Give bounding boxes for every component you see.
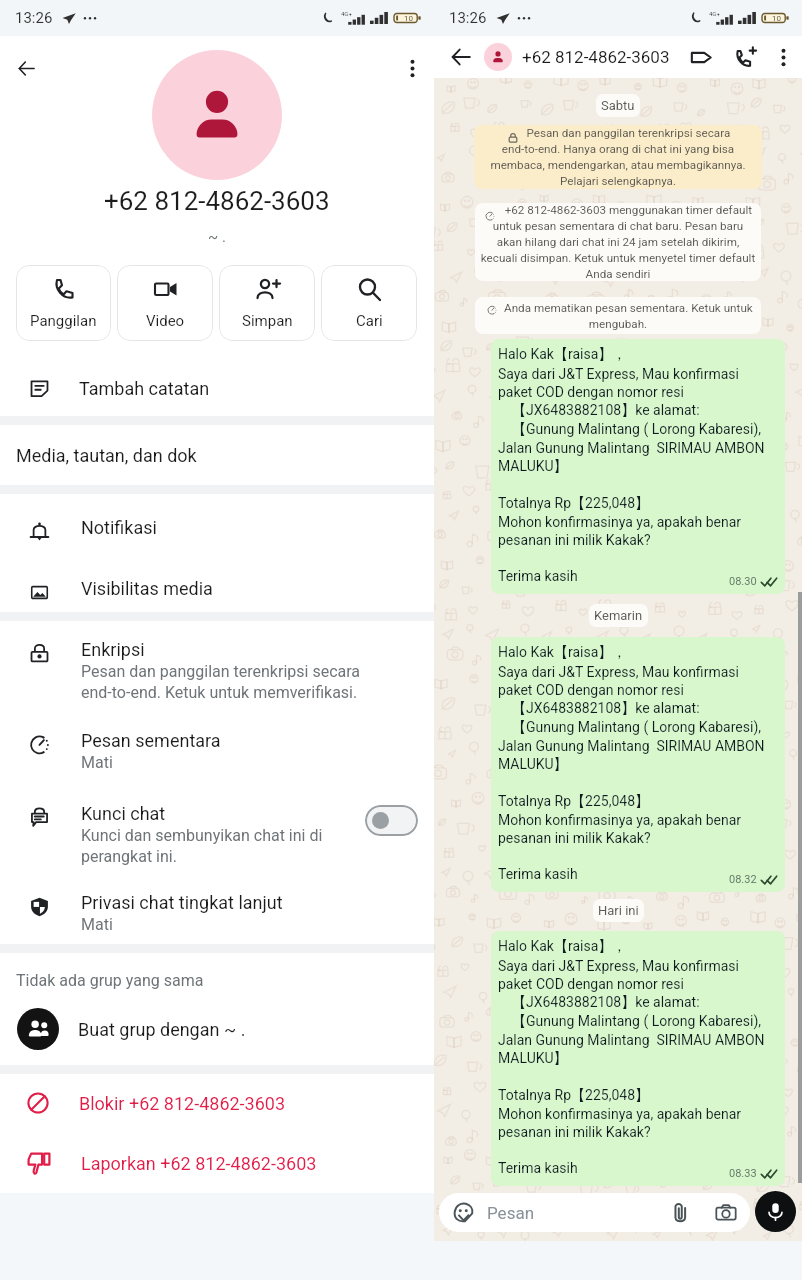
staticText: Anda mematikan pesan sementara. Ketuk un… xyxy=(475,301,761,331)
staticText: +62 812-4862-3603 xyxy=(104,186,330,216)
button[interactable]: Back xyxy=(4,46,48,90)
staticText: Blokir +62 812-4862-3603 xyxy=(79,1093,286,1114)
button[interactable]: Kemarin xyxy=(589,604,648,627)
button[interactable]: Buat grup dengan ~ . xyxy=(0,1004,434,1054)
button[interactable]: Enkripsi xyxy=(0,630,434,702)
button[interactable]: More options xyxy=(392,48,432,88)
button[interactable]: Halo Kak【raisa】， Saya dari J&T Express, … xyxy=(491,339,785,594)
staticText: Pesan dan panggilan terenkripsi secara e… xyxy=(474,126,762,188)
staticText: Notifikasi xyxy=(81,517,157,538)
staticText: Privasi chat tingkat lanjut xyxy=(81,892,283,913)
staticText: Media, tautan, dan dok xyxy=(16,445,197,466)
button[interactable]: Anda mematikan pesan sementara. Ketuk un… xyxy=(475,297,761,334)
button[interactable]: Notifikasi xyxy=(0,508,434,538)
button[interactable]: Profile photo xyxy=(152,50,282,180)
button[interactable]: +62 812-4862-3603 menggunakan timer defa… xyxy=(475,203,761,281)
staticText: Enkripsi xyxy=(81,639,145,660)
staticText: Kemarin xyxy=(594,608,643,623)
button[interactable]: Cari xyxy=(321,265,417,341)
button[interactable]: Back xyxy=(446,42,476,72)
staticText: Halo Kak【raisa】， Saya dari J&T Express, … xyxy=(498,938,765,1176)
staticText: Kunci dan sembunyikan chat ini di perang… xyxy=(81,826,323,866)
button[interactable]: Pesan dan panggilan terenkripsi secara e… xyxy=(474,125,762,189)
button[interactable]: Call xyxy=(730,42,760,72)
staticText: 08.33 xyxy=(729,1167,757,1180)
staticText: Halo Kak【raisa】， Saya dari J&T Express, … xyxy=(498,346,765,584)
staticText: 08.30 xyxy=(729,575,757,588)
staticText: Mati xyxy=(81,915,113,934)
staticText: 13:26 xyxy=(15,9,53,27)
staticText: Cari xyxy=(356,312,383,330)
staticText: Visibilitas media xyxy=(81,578,213,599)
staticText: Pesan xyxy=(487,1203,535,1223)
button[interactable]: Tambah catatan xyxy=(0,359,434,417)
staticText: Halo Kak【raisa】， Saya dari J&T Express, … xyxy=(498,644,765,882)
button[interactable]: Media, tautan, dan dok xyxy=(0,425,434,485)
button[interactable]: Visibilitas media xyxy=(0,569,434,599)
staticText: Hari ini xyxy=(598,903,639,918)
button[interactable]: Kunci chat xyxy=(0,794,434,866)
button[interactable]: Kunci chat toggle xyxy=(365,805,418,836)
staticText: Pesan sementara xyxy=(81,730,221,751)
staticText: Laporkan +62 812-4862-3603 xyxy=(81,1153,317,1174)
button[interactable]: Hari ini xyxy=(593,899,644,922)
staticText: 08.32 xyxy=(729,873,757,886)
staticText: 4G+ xyxy=(709,10,720,17)
staticText: Video xyxy=(146,312,185,330)
staticText: 10 xyxy=(772,14,781,23)
staticText: Pesan dan panggilan terenkripsi secara e… xyxy=(81,662,361,702)
button[interactable]: Voice message xyxy=(755,1191,796,1232)
staticText: Sabtu xyxy=(601,98,635,113)
button[interactable]: Label xyxy=(686,42,716,72)
staticText: 10 xyxy=(404,14,413,23)
button[interactable]: Pesan xyxy=(439,1193,750,1232)
button[interactable]: More options xyxy=(768,42,798,72)
staticText: ~ . xyxy=(208,228,226,246)
staticText: Tambah catatan xyxy=(79,378,210,399)
staticText: 13:26 xyxy=(449,9,487,27)
button[interactable]: Video xyxy=(117,265,213,341)
staticText: 4G+ xyxy=(341,10,352,17)
staticText: Buat grup dengan ~ . xyxy=(78,1019,246,1040)
button[interactable]: Pesan sementara xyxy=(0,721,434,772)
staticText: +62 812-4862-3603 menggunakan timer defa… xyxy=(475,203,761,281)
staticText: Panggilan xyxy=(30,312,97,330)
button[interactable]: +62 812-4862-3603 xyxy=(522,47,670,67)
staticText: Mati xyxy=(81,753,113,772)
button[interactable]: Privasi chat tingkat lanjut xyxy=(0,883,434,934)
button[interactable]: Halo Kak【raisa】， Saya dari J&T Express, … xyxy=(491,931,785,1186)
staticText: Simpan xyxy=(242,312,293,330)
button[interactable]: Panggilan xyxy=(16,265,111,341)
button[interactable]: Laporkan +62 812-4862-3603 xyxy=(0,1137,434,1189)
button[interactable] xyxy=(484,43,512,71)
staticText: Kunci chat xyxy=(81,803,166,824)
button[interactable]: Halo Kak【raisa】， Saya dari J&T Express, … xyxy=(491,637,785,892)
button[interactable]: Blokir +62 812-4862-3603 xyxy=(0,1077,434,1129)
button[interactable]: Simpan xyxy=(219,265,315,341)
button[interactable]: Sabtu xyxy=(596,94,640,117)
staticText: Tidak ada grup yang sama xyxy=(16,971,204,990)
